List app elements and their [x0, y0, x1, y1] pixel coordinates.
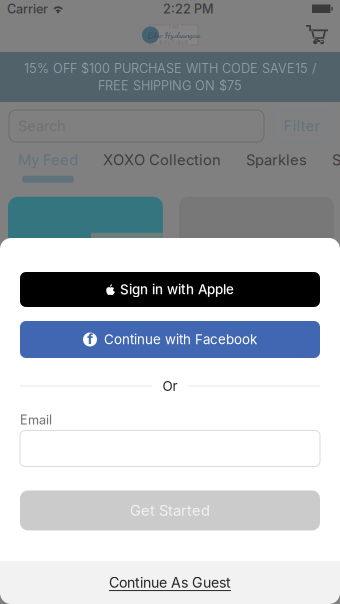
button[interactable]: Sign in with Apple — [20, 272, 320, 307]
staticText: Email — [20, 412, 52, 427]
button[interactable]: f — [20, 321, 320, 358]
staticText: XOXO Collection — [103, 151, 221, 169]
staticText: Or — [162, 378, 177, 394]
staticText: Blue Hydrangea — [147, 29, 200, 41]
staticText: 2:22 PM — [163, 1, 214, 17]
staticText: Get Started — [130, 502, 210, 519]
button[interactable]: Sweat — [307, 151, 340, 169]
staticText: Filter — [283, 117, 320, 135]
staticText: T H E — [168, 24, 179, 30]
staticText: Search — [18, 117, 66, 135]
staticText: B O U T I Q U E — [159, 40, 188, 45]
staticText: My Feed — [18, 151, 78, 169]
button[interactable]: Cart — [301, 20, 334, 50]
button[interactable]: Sparkles — [221, 151, 307, 169]
staticText: FREE SHIPPING ON $75 — [98, 78, 242, 93]
staticText: Sparkles — [246, 151, 307, 169]
button[interactable]: Continue As Guest — [0, 561, 340, 604]
button[interactable]: My Feed — [0, 151, 78, 183]
button[interactable]: Get Started — [20, 490, 320, 530]
staticText: f — [87, 330, 93, 348]
staticText: Continue with Facebook — [104, 331, 257, 347]
staticText: Carrier — [7, 1, 48, 17]
staticText: Continue As Guest — [109, 574, 231, 591]
button[interactable]: Filter — [273, 110, 331, 142]
button[interactable]: XOXO Collection — [78, 151, 221, 169]
staticText: Sweat — [332, 151, 340, 169]
staticText: Sign in with Apple — [120, 281, 234, 297]
staticText: 15% OFF $100 PURCHASE WITH CODE SAVE15 / — [24, 61, 316, 76]
